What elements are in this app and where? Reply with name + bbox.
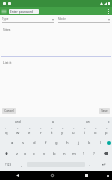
staticText: 5 xyxy=(51,127,53,130)
button[interactable]: Enter password xyxy=(9,9,39,14)
staticText: Enter password xyxy=(10,10,33,14)
staticText: p xyxy=(105,130,108,136)
button[interactable]: 9 xyxy=(90,126,101,137)
staticText: a xyxy=(11,140,14,146)
button[interactable]: Mode xyxy=(58,17,110,23)
button[interactable]: f xyxy=(40,137,51,148)
staticText: ?123 xyxy=(5,163,12,167)
staticText: d xyxy=(33,140,36,146)
staticText: and xyxy=(15,120,21,124)
button[interactable]: Open navigation menu xyxy=(0,7,8,15)
staticText: a xyxy=(52,120,54,124)
button[interactable]: g xyxy=(51,137,62,148)
staticText: w xyxy=(16,130,20,136)
staticText: b xyxy=(53,151,56,157)
staticText: Cancel xyxy=(4,109,14,113)
button[interactable]: Backspace xyxy=(99,148,112,159)
button[interactable]: Cancel xyxy=(2,108,16,114)
staticText: Mode xyxy=(58,17,66,21)
staticText: 0 xyxy=(106,127,108,130)
staticText: g xyxy=(55,140,58,146)
staticText: q xyxy=(5,130,8,136)
button[interactable]: h xyxy=(62,137,73,148)
staticText: v xyxy=(43,151,46,157)
staticText: Type xyxy=(2,17,9,21)
button[interactable]: and xyxy=(0,117,35,126)
button[interactable]: x xyxy=(21,148,30,159)
button[interactable]: ? xyxy=(89,148,99,159)
button[interactable]: z xyxy=(12,148,21,159)
button[interactable]: 1 xyxy=(0,126,12,137)
staticText: h xyxy=(66,140,69,146)
staticText: List it xyxy=(3,60,12,65)
staticText: ! xyxy=(83,151,85,157)
staticText: n xyxy=(63,151,66,157)
button[interactable]: Type xyxy=(2,17,54,23)
button[interactable]: n xyxy=(59,148,69,159)
button[interactable]: d xyxy=(29,137,40,148)
staticText: f xyxy=(45,140,47,146)
button[interactable]: Switch to symbols xyxy=(0,159,17,170)
button[interactable]: 6 xyxy=(57,126,68,137)
button[interactable]: a xyxy=(35,117,70,126)
staticText: u xyxy=(72,130,75,136)
staticText: c xyxy=(33,151,36,157)
staticText: o xyxy=(94,130,97,136)
staticText: k xyxy=(88,140,91,146)
staticText: m xyxy=(72,151,76,157)
staticText: e xyxy=(28,130,31,136)
staticText: j xyxy=(78,140,80,146)
button[interactable]: j xyxy=(73,137,84,148)
button[interactable]: More options xyxy=(104,7,112,15)
staticText: x xyxy=(24,151,27,157)
button[interactable]: an xyxy=(70,117,105,126)
button[interactable]: Home xyxy=(35,171,69,180)
staticText: 9 xyxy=(95,127,97,130)
staticText: i xyxy=(84,130,86,136)
button[interactable]: 4 xyxy=(35,126,46,137)
staticText: 7 xyxy=(73,127,75,130)
button[interactable]: Save xyxy=(99,108,110,114)
staticText: Sites xyxy=(3,27,11,32)
button[interactable]: c xyxy=(30,148,39,159)
button[interactable]: s xyxy=(18,137,29,148)
button[interactable]: Back xyxy=(0,171,35,180)
button[interactable]: 0 xyxy=(101,126,112,137)
button[interactable]: Shift xyxy=(0,148,12,159)
button[interactable]: More suggestions xyxy=(105,117,112,126)
button[interactable]: l xyxy=(95,137,106,148)
staticText: r xyxy=(40,130,42,136)
staticText: 2 xyxy=(17,127,19,130)
staticText: , xyxy=(21,162,23,167)
button[interactable]: Recent apps xyxy=(69,171,103,180)
staticText: Save xyxy=(101,109,108,113)
staticText: 4 xyxy=(40,127,42,130)
staticText: 8 xyxy=(84,127,86,130)
staticText: 1 xyxy=(5,127,7,130)
staticText: z xyxy=(16,151,18,157)
button[interactable]: Enter xyxy=(95,159,112,170)
button[interactable]: k xyxy=(84,137,95,148)
staticText: . xyxy=(89,162,91,167)
button[interactable]: a xyxy=(7,137,18,148)
staticText: 6 xyxy=(62,127,64,130)
button[interactable]: b xyxy=(49,148,59,159)
staticText: ? xyxy=(93,151,95,157)
button[interactable]: 8 xyxy=(79,126,90,137)
staticText: y xyxy=(61,130,64,136)
button[interactable]: 5 xyxy=(46,126,57,137)
button[interactable]: 3 xyxy=(24,126,35,137)
button[interactable]: m xyxy=(69,148,79,159)
staticText: l xyxy=(100,140,102,146)
button[interactable]: , xyxy=(17,159,27,170)
button[interactable]: Hide keyboard xyxy=(103,171,112,180)
staticText: an xyxy=(86,120,90,124)
button[interactable]: v xyxy=(39,148,49,159)
staticText: 3 xyxy=(29,127,31,130)
button[interactable]: ! xyxy=(79,148,89,159)
button[interactable]: 2 xyxy=(12,126,24,137)
button[interactable]: Voice input xyxy=(106,137,112,148)
button[interactable]: 7 xyxy=(68,126,79,137)
